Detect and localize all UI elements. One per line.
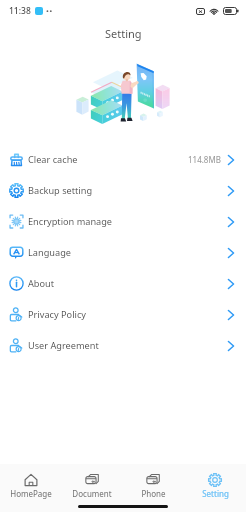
button[interactable]: User Agreement xyxy=(0,330,246,361)
button[interactable]: HomePage xyxy=(0,467,61,504)
staticText: Language xyxy=(28,246,71,259)
staticText: Setting xyxy=(202,488,229,499)
button[interactable]: About xyxy=(0,268,246,299)
staticText: Encryption manage xyxy=(28,215,113,228)
staticText: HomePage xyxy=(10,488,52,499)
button[interactable]: Encryption manage xyxy=(0,206,246,237)
staticText: 11:38 xyxy=(9,5,31,17)
staticText: Privacy Policy xyxy=(28,308,86,321)
staticText: Phone xyxy=(141,488,166,499)
staticText: About xyxy=(28,277,55,290)
staticText: User Agreement xyxy=(28,339,99,352)
button[interactable]: Language xyxy=(0,237,246,268)
button[interactable]: Document xyxy=(61,467,122,504)
button[interactable]: Setting xyxy=(184,467,246,504)
staticText: Setting xyxy=(105,26,142,41)
staticText: Clear cache xyxy=(28,153,78,166)
staticText: Document xyxy=(72,488,112,499)
button[interactable]: Clear cache xyxy=(0,144,246,175)
button[interactable]: Backup setting xyxy=(0,175,246,206)
staticText: Backup setting xyxy=(28,184,93,197)
button[interactable]: Phone xyxy=(122,467,184,504)
staticText: 114.8MB xyxy=(188,154,221,165)
button[interactable]: Privacy Policy xyxy=(0,299,246,330)
